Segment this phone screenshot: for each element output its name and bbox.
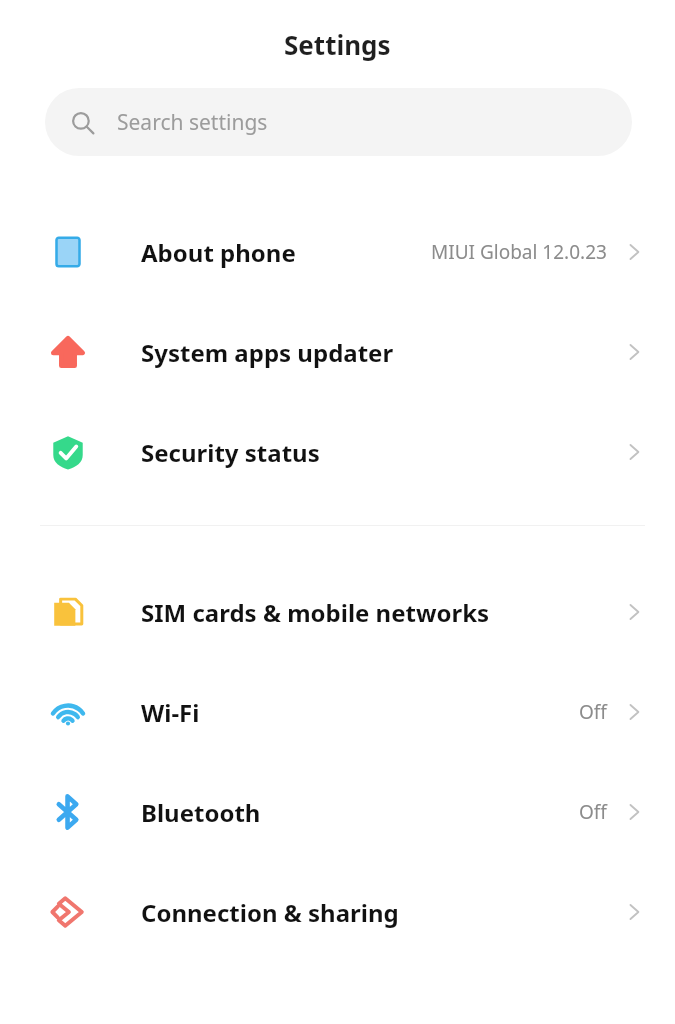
staticText: SIM cards & mobile networks <box>141 596 490 629</box>
button[interactable]: Bluetooth <box>0 762 675 862</box>
button[interactable]: Connection & sharing <box>0 862 675 962</box>
button[interactable]: Security status <box>0 402 675 502</box>
staticText: About phone <box>141 236 296 269</box>
button[interactable]: Wi-Fi <box>0 662 675 762</box>
button[interactable]: Search settings <box>45 88 632 156</box>
staticText: Security status <box>141 436 320 469</box>
staticText: Search settings <box>117 108 268 137</box>
button[interactable]: System apps updater <box>0 302 675 402</box>
staticText: Off <box>579 799 607 825</box>
staticText: Off <box>579 699 607 725</box>
staticText: MIUI Global 12.0.23 <box>431 239 607 265</box>
button[interactable]: SIM cards & mobile networks <box>0 562 675 662</box>
staticText: Wi-Fi <box>141 696 200 729</box>
button[interactable]: About phone <box>0 202 675 302</box>
staticText: Bluetooth <box>141 796 261 829</box>
staticText: Settings <box>284 27 391 62</box>
staticText: System apps updater <box>141 336 394 369</box>
staticText: Connection & sharing <box>141 896 399 929</box>
